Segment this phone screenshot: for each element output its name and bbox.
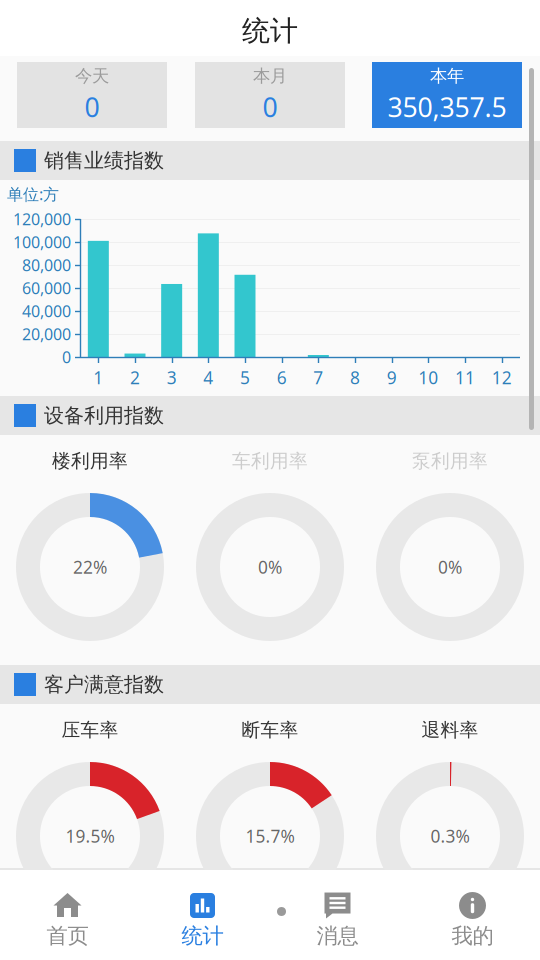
staticText: 首页	[46, 923, 88, 949]
staticText: 15.7%	[245, 824, 294, 847]
staticText: 5	[240, 366, 250, 389]
staticText: 40,000	[22, 300, 71, 322]
staticText: 100,000	[13, 231, 71, 253]
button[interactable]: 今天	[17, 62, 167, 128]
button[interactable]: 我的	[405, 870, 540, 960]
staticText: 统计	[181, 923, 223, 949]
button[interactable]: 首页	[0, 870, 135, 960]
staticText: 120,000	[13, 208, 71, 230]
button[interactable]: 本年	[372, 62, 522, 128]
staticText: 消息	[316, 923, 358, 949]
staticText: 本年	[430, 65, 464, 87]
staticText: 350,357.5	[387, 89, 506, 125]
staticText: 12	[492, 366, 512, 389]
staticText: 楼利用率	[52, 449, 128, 472]
staticText: 22%	[73, 555, 107, 578]
staticText: 我的	[451, 923, 493, 949]
staticText: 车利用率	[232, 449, 308, 472]
staticText: 统计	[242, 14, 298, 48]
staticText: 今天	[75, 65, 109, 87]
staticText: 销售业绩指数	[44, 148, 164, 173]
staticText: 泵利用率	[412, 449, 488, 472]
staticText: 1	[93, 366, 103, 389]
button[interactable]: 消息	[270, 870, 405, 960]
staticText: 11	[455, 366, 475, 389]
staticText: 0%	[438, 555, 462, 578]
staticText: 80,000	[22, 254, 71, 276]
staticText: 退料率	[421, 718, 478, 741]
staticText: 10	[418, 366, 438, 389]
staticText: 单位:方	[7, 183, 59, 205]
staticText: 0%	[258, 555, 282, 578]
staticText: 0	[262, 89, 277, 125]
button[interactable]: 统计	[135, 870, 270, 960]
staticText: 9	[387, 366, 397, 389]
staticText: 6	[277, 366, 287, 389]
staticText: 客户满意指数	[44, 672, 164, 697]
staticText: 8	[350, 366, 360, 389]
staticText: 2	[130, 366, 140, 389]
staticText: 设备利用指数	[44, 403, 164, 428]
staticText: 压车率	[61, 718, 118, 741]
staticText: 20,000	[22, 323, 71, 345]
staticText: 断车率	[241, 718, 298, 741]
staticText: 4	[203, 366, 213, 389]
button[interactable]: 本月	[195, 62, 345, 128]
staticText: 60,000	[22, 277, 71, 299]
staticText: 0.3%	[430, 824, 469, 847]
staticText: 7	[313, 366, 323, 389]
staticText: 0	[84, 89, 99, 125]
staticText: 3	[167, 366, 177, 389]
staticText: 本月	[253, 65, 287, 87]
staticText: 0	[62, 346, 71, 368]
staticText: 19.5%	[65, 824, 114, 847]
